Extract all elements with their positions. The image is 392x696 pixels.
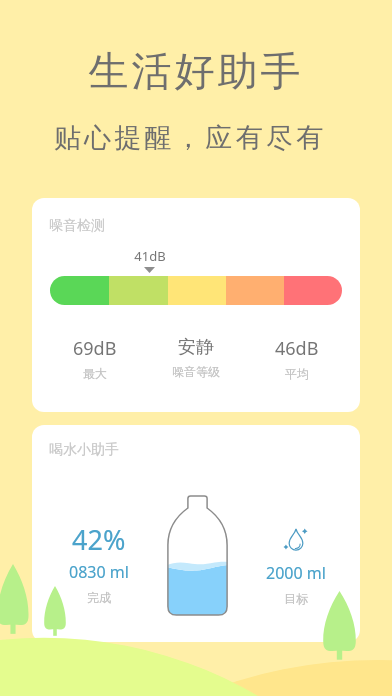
staticText: 贴心提醒，应有尽有 <box>0 121 386 155</box>
staticText: 69dB <box>73 336 117 361</box>
staticText: 最大 <box>83 366 107 381</box>
staticText: 喝水小助手 <box>49 441 119 459</box>
staticText: 41dB <box>120 247 180 265</box>
button[interactable]: 喝水小助手 <box>32 425 360 642</box>
staticText: 噪音检测 <box>49 217 105 235</box>
staticText: 0830 ml <box>69 561 129 583</box>
other: Water goal <box>281 528 311 554</box>
staticText: 平均 <box>285 366 309 381</box>
staticText: 46dB <box>275 336 319 361</box>
staticText: 完成 <box>87 590 111 605</box>
staticText: 安静 <box>178 336 214 359</box>
staticText: 生活好助手 <box>0 46 392 96</box>
staticText: 2000 ml <box>266 562 326 584</box>
staticText: 目标 <box>284 591 308 606</box>
staticText: 噪音等级 <box>172 364 220 379</box>
staticText: 42% <box>72 521 126 558</box>
button[interactable]: 噪音检测 <box>32 198 360 412</box>
